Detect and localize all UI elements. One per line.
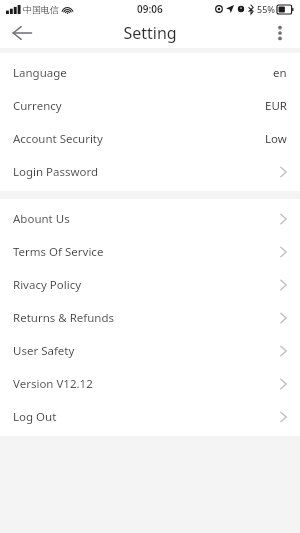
staticText: Rivacy Policy (13, 277, 82, 293)
staticText: Language (13, 65, 67, 81)
button[interactable]: Login Password (0, 155, 300, 188)
staticText: 55% (257, 3, 275, 15)
staticText: Account Security (13, 131, 103, 147)
staticText: Setting (123, 22, 177, 44)
staticText: Login Password (13, 164, 99, 180)
button[interactable]: Terms Of Service (0, 235, 300, 268)
staticText: User Safety (13, 343, 75, 359)
staticText: Log Out (13, 409, 57, 425)
button[interactable]: Rivacy Policy (0, 268, 300, 301)
button[interactable]: Version V12.12 (0, 367, 300, 400)
button[interactable]: Returns & Refunds (0, 301, 300, 334)
staticText: 09:06 (137, 2, 163, 16)
button[interactable]: More options (260, 18, 300, 48)
staticText: 中国电信 (23, 4, 59, 15)
button[interactable]: Back (0, 18, 44, 48)
staticText: Version V12.12 (13, 376, 93, 392)
staticText: EUR (265, 98, 287, 114)
staticText: Currency (13, 98, 62, 114)
staticText: Terms Of Service (13, 244, 104, 260)
staticText: en (273, 65, 287, 81)
button[interactable]: Account Security (0, 122, 300, 155)
button[interactable]: Language (0, 56, 300, 89)
button[interactable]: Abount Us (0, 202, 300, 235)
button[interactable]: Log Out (0, 400, 300, 433)
button[interactable]: User Safety (0, 334, 300, 367)
staticText: Abount Us (13, 211, 70, 227)
staticText: Returns & Refunds (13, 310, 115, 326)
button[interactable]: Currency (0, 89, 300, 122)
staticText: Low (265, 131, 287, 147)
